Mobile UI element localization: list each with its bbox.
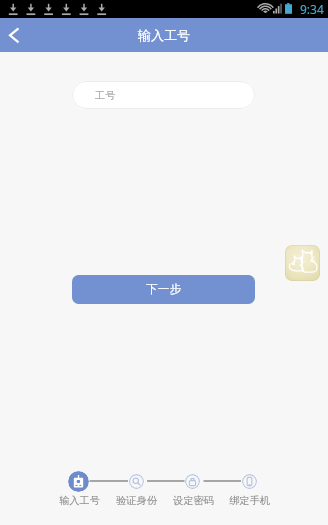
- staticText: 输入工号: [59, 494, 100, 507]
- button[interactable]: [129, 474, 144, 489]
- button[interactable]: Back: [0, 18, 30, 52]
- staticText: 输入工号: [138, 27, 190, 43]
- staticText: 绑定手机: [229, 494, 270, 507]
- staticText: 下一步: [146, 282, 182, 297]
- button[interactable]: [185, 474, 200, 489]
- button[interactable]: 下一步: [72, 275, 255, 304]
- staticText: 验证身份: [116, 494, 157, 507]
- staticText: 设定密码: [173, 494, 214, 507]
- button[interactable]: [242, 474, 257, 489]
- staticText: 工号: [95, 89, 116, 102]
- button[interactable]: Customer service: [285, 245, 320, 281]
- staticText: 9:34: [300, 1, 324, 17]
- button[interactable]: 工号: [72, 81, 255, 109]
- button[interactable]: [68, 471, 89, 492]
